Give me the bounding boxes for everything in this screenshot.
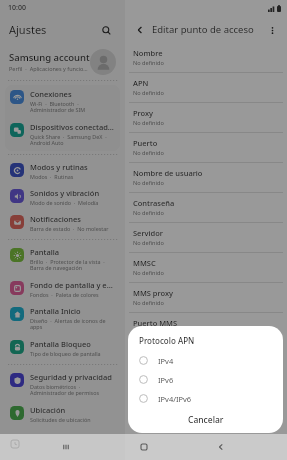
staticText: Barra de estado · No molestar — [30, 225, 109, 232]
staticText: No definido — [133, 89, 164, 97]
button[interactable]: IPv4 — [128, 351, 283, 370]
staticText: Puerto MMS — [133, 318, 178, 328]
staticText: No definido — [133, 209, 164, 217]
button[interactable]: Samsung account — [0, 43, 125, 80]
staticText: Pantalla Inicio — [30, 306, 81, 316]
staticText: 10:00 — [8, 3, 26, 13]
button[interactable]: Cancelar — [128, 410, 283, 429]
button[interactable]: Puerto — [125, 133, 287, 162]
staticText: Perfil · Aplicaciones y funciones — [9, 65, 90, 72]
button[interactable]: Dispositivos conectados — [5, 118, 120, 151]
staticText: No definido — [133, 239, 164, 247]
staticText: No definido — [133, 179, 164, 187]
button[interactable]: Seguridad y privacidad — [5, 368, 120, 401]
staticText: No definido — [133, 269, 164, 277]
staticText: Servidor — [133, 228, 163, 238]
staticText: Editar punto de acceso — [152, 23, 254, 36]
button[interactable]: Nombre — [125, 43, 287, 72]
button[interactable]: Recientes — [55, 436, 77, 458]
button[interactable]: Bienestar digital — [9, 438, 21, 450]
button[interactable]: Modos y rutinas — [5, 158, 120, 184]
staticText: Brillo · Protector de la vista · Barra d… — [30, 258, 115, 272]
staticText: Sonidos y vibración — [30, 188, 100, 198]
staticText: Notificaciones — [30, 214, 81, 224]
button[interactable]: APN — [125, 73, 287, 102]
button[interactable]: Inicio — [133, 436, 155, 458]
button[interactable]: Ubicación — [5, 401, 120, 427]
button[interactable]: Notificaciones — [5, 210, 120, 236]
button[interactable]: IPv4/IPv6 — [128, 389, 283, 408]
button[interactable]: MMS proxy — [125, 283, 287, 312]
staticText: Nombre de usuario — [133, 168, 203, 178]
button[interactable]: Buscar — [96, 20, 116, 40]
button[interactable]: Servidor — [125, 223, 287, 252]
staticText: Solicitudes de ubicación — [30, 416, 91, 423]
staticText: Datos biométricos · Administrador de per… — [30, 383, 115, 397]
staticText: Wi-Fi · Bluetooth · Administrador de SIM — [30, 100, 115, 114]
staticText: Puerto — [133, 138, 158, 148]
button[interactable]: MCC — [125, 343, 287, 372]
staticText: Tipo de bloqueo de pantalla — [30, 350, 101, 357]
staticText: Modos y rutinas — [30, 162, 88, 172]
staticText: MMS proxy — [133, 288, 173, 298]
button[interactable]: Contraseña — [125, 193, 287, 222]
staticText: Diseño · Alertas de iconos de apps — [30, 317, 115, 331]
button[interactable]: Puerto MMS — [125, 313, 287, 342]
staticText: Proxy — [133, 108, 154, 118]
staticText: Pantalla — [30, 247, 60, 257]
button[interactable]: Conexiones — [5, 85, 120, 118]
staticText: No definido — [133, 359, 164, 367]
staticText: No definido — [133, 59, 164, 67]
staticText: APN — [133, 78, 149, 88]
staticText: No definido — [133, 299, 164, 307]
button[interactable]: Proxy — [125, 103, 287, 132]
button[interactable]: Pantalla Inicio — [5, 302, 120, 335]
staticText: Quick Share · Samsung DeX · Android Auto — [30, 133, 115, 147]
button[interactable]: IPv6 — [128, 370, 283, 389]
button[interactable]: Nombre de usuario — [125, 163, 287, 192]
staticText: No definido — [133, 119, 164, 127]
button[interactable]: Atrás — [210, 436, 232, 458]
staticText: Protocolo APN — [139, 335, 195, 346]
staticText: Ajustes — [9, 22, 47, 37]
staticText: Ubicación — [30, 405, 66, 415]
staticText: Modos · Rutinas — [30, 173, 74, 180]
staticText: Fondo de pantalla y estilo — [30, 280, 115, 290]
button[interactable]: Fondo de pantalla y estilo — [5, 276, 120, 302]
staticText: Seguridad y privacidad — [30, 372, 112, 382]
staticText: IPv6 — [158, 375, 174, 385]
button[interactable]: Pantalla Bloqueo — [5, 335, 120, 361]
button[interactable]: MMSC — [125, 253, 287, 282]
staticText: IPv4 — [158, 356, 174, 366]
button[interactable]: Pantalla — [5, 243, 120, 276]
staticText: No definido — [133, 149, 164, 157]
staticText: MMSC — [133, 258, 156, 268]
staticText: IPv4/IPv6 — [158, 394, 192, 404]
staticText: Fondos · Paleta de colores — [30, 291, 99, 298]
button[interactable]: Sonidos y vibración — [5, 184, 120, 210]
staticText: Cancelar — [188, 414, 224, 426]
staticText: Modo de sonido · Melodía — [30, 199, 99, 206]
staticText: Contraseña — [133, 198, 175, 208]
staticText: Conexiones — [30, 89, 72, 99]
staticText: Pantalla Bloqueo — [30, 339, 91, 349]
button[interactable]: Atrás — [131, 21, 149, 39]
staticText: Nombre — [133, 48, 163, 58]
button[interactable]: Más opciones — [263, 21, 281, 39]
staticText: MCC — [133, 348, 150, 358]
staticText: Samsung account — [9, 51, 90, 64]
staticText: Dispositivos conectados — [30, 122, 115, 132]
